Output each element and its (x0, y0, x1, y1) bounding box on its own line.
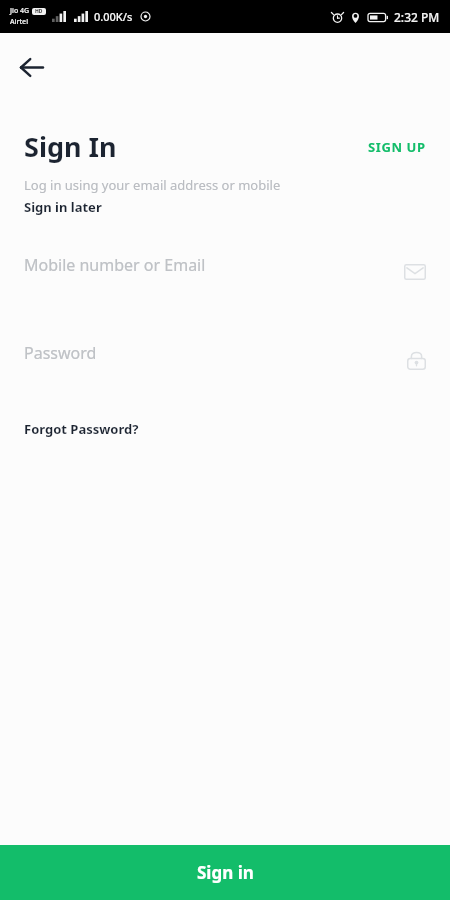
staticText: 2:32 PM (394, 9, 440, 25)
button[interactable]: Forgot Password? (24, 420, 139, 438)
staticText: Forgot Password? (24, 420, 139, 438)
button[interactable]: Sign in later (24, 198, 102, 216)
staticText: 0.00K/s (94, 9, 133, 24)
button[interactable]: Back (12, 47, 52, 87)
staticText: Sign in later (24, 198, 102, 216)
staticText: Airtel (10, 17, 29, 27)
staticText: Mobile number or Email (24, 254, 206, 276)
button[interactable]: Password (0, 336, 450, 370)
button[interactable]: SIGN UP (366, 132, 428, 162)
staticText: SIGN UP (368, 138, 426, 156)
button[interactable]: Sign in (0, 845, 450, 900)
staticText: Jio 4G (10, 6, 30, 16)
staticText: Sign In (24, 128, 117, 165)
button[interactable]: Mobile number or Email (0, 248, 450, 282)
staticText: HD (35, 8, 43, 15)
staticText: Log in using your email address or mobil… (24, 176, 426, 194)
staticText: Password (24, 342, 97, 364)
staticText: Sign in (197, 861, 254, 884)
